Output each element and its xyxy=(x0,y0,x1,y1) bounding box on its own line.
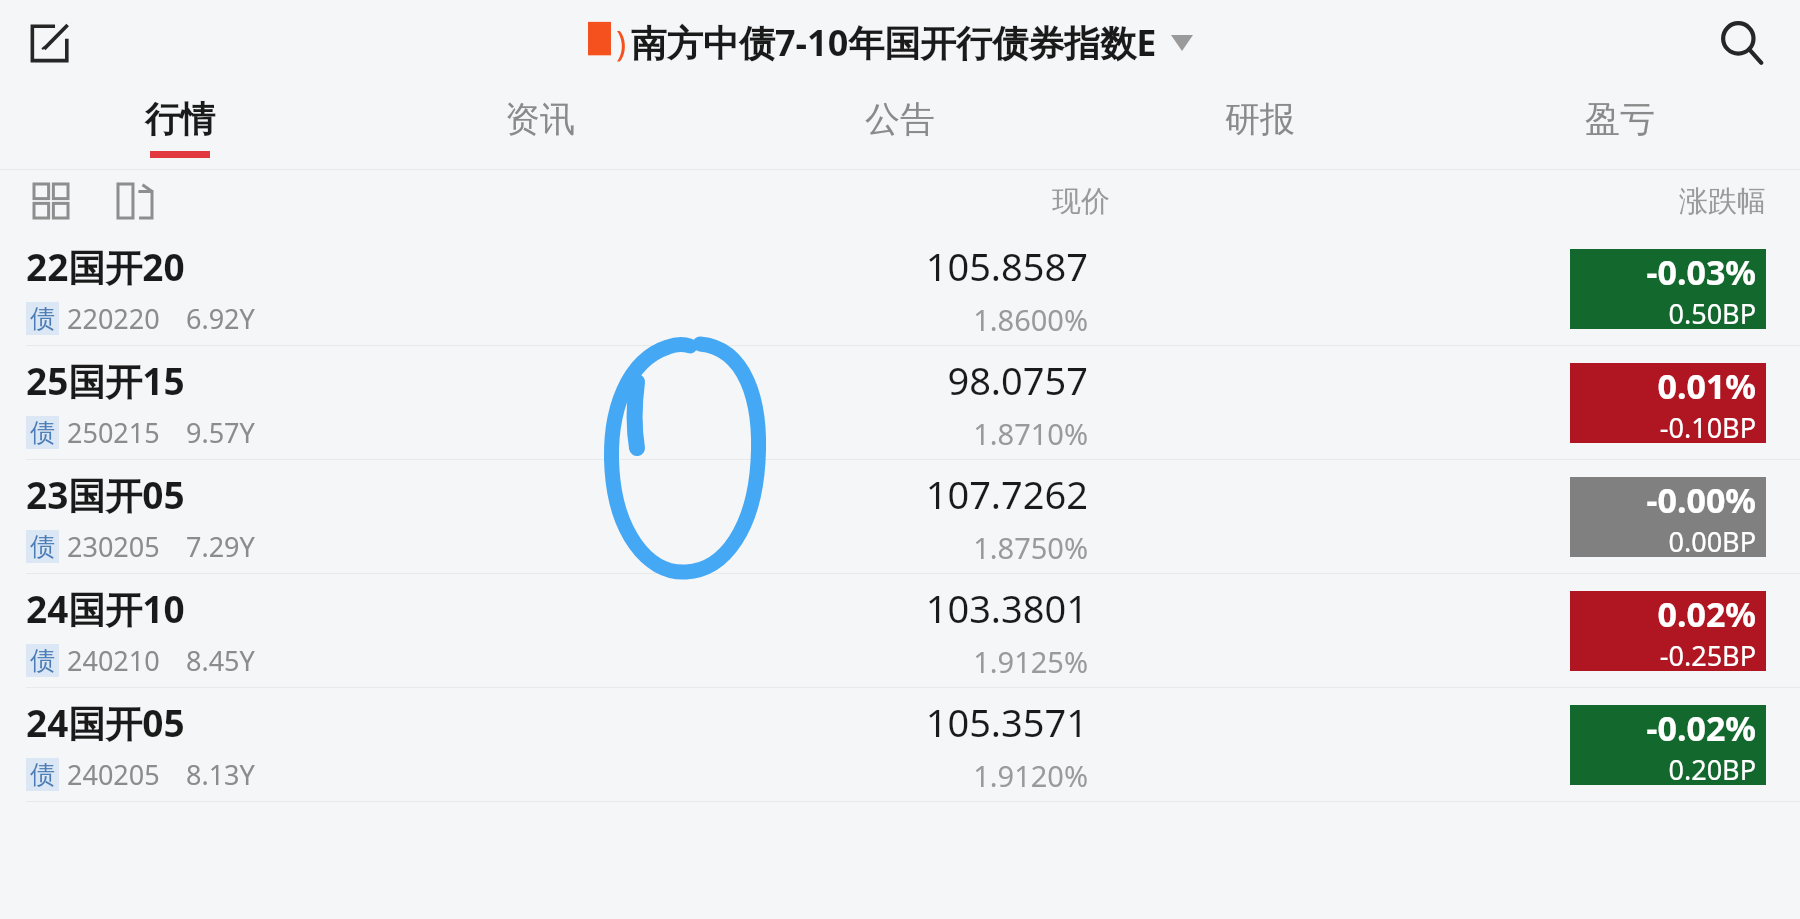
staticText: 9.57Y xyxy=(186,414,255,451)
staticText: 220220 xyxy=(67,300,160,337)
staticText: 债 xyxy=(30,303,55,334)
button[interactable]: 行情 xyxy=(0,85,360,170)
button[interactable]: 公告 xyxy=(720,85,1080,170)
staticText: 7.29Y xyxy=(186,528,255,565)
button[interactable]: 22国开20 xyxy=(0,232,1800,346)
staticText: 盈亏 xyxy=(1585,97,1655,141)
staticText: 24国开05 xyxy=(26,697,185,748)
button[interactable]: 0.02% xyxy=(1570,591,1766,671)
button[interactable]: ) xyxy=(588,18,1193,67)
button[interactable]: -0.00% xyxy=(1570,477,1766,557)
staticText: 25国开15 xyxy=(26,355,185,406)
staticText: 0.00BP xyxy=(1668,523,1756,557)
staticText: -0.03% xyxy=(1646,249,1756,295)
staticText: 0.50BP xyxy=(1668,295,1756,329)
staticText: 研报 xyxy=(1225,97,1295,141)
staticText: -0.10BP xyxy=(1659,409,1756,443)
staticText: 250215 xyxy=(67,414,160,451)
staticText: ) xyxy=(616,20,627,66)
staticText: 105.3571 xyxy=(925,696,1088,748)
staticText: 债 xyxy=(30,645,55,676)
button[interactable]: -0.02% xyxy=(1570,705,1766,785)
button[interactable]: 0.01% xyxy=(1570,363,1766,443)
staticText: 债 xyxy=(30,417,55,448)
button[interactable]: Search xyxy=(1706,7,1778,79)
staticText: -0.25BP xyxy=(1659,637,1756,671)
button[interactable]: 资讯 xyxy=(360,85,720,170)
staticText: -0.02% xyxy=(1646,705,1756,751)
staticText: 8.13Y xyxy=(186,756,255,793)
staticText: 1.9120% xyxy=(973,756,1088,795)
staticText: 23国开05 xyxy=(26,469,185,520)
staticText: 240205 xyxy=(67,756,160,793)
staticText: 0.20BP xyxy=(1668,751,1756,785)
staticText: 1.8710% xyxy=(973,414,1088,453)
staticText: 1.8750% xyxy=(973,528,1088,567)
staticText: 98.0757 xyxy=(947,354,1088,406)
button[interactable]: Grid view xyxy=(24,174,78,228)
staticText: 公告 xyxy=(865,97,935,141)
staticText: 6.92Y xyxy=(186,300,255,337)
staticText: 240210 xyxy=(67,642,160,679)
staticText: 0.01% xyxy=(1657,363,1756,409)
staticText: 现价 xyxy=(1052,183,1110,220)
button[interactable]: 24国开05 xyxy=(0,688,1800,802)
staticText: 行情 xyxy=(145,97,215,141)
staticText: 107.7262 xyxy=(925,468,1088,520)
staticText: 230205 xyxy=(67,528,160,565)
staticText: 债 xyxy=(30,759,55,790)
staticText: 103.3801 xyxy=(925,582,1088,634)
staticText: 南方中债7-10年国开行债券指数E xyxy=(631,18,1157,67)
staticText: 8.45Y xyxy=(186,642,255,679)
button[interactable]: 25国开15 xyxy=(0,346,1800,460)
staticText: 105.8587 xyxy=(925,240,1088,292)
staticText: 债 xyxy=(30,531,55,562)
staticText: 1.9125% xyxy=(973,642,1088,681)
staticText: 24国开10 xyxy=(26,583,185,634)
button[interactable]: Edit xyxy=(14,7,86,79)
staticText: 涨跌幅 xyxy=(1679,183,1766,220)
staticText: 22国开20 xyxy=(26,241,185,292)
button[interactable]: 24国开10 xyxy=(0,574,1800,688)
button[interactable]: 盈亏 xyxy=(1440,85,1800,170)
staticText: 1.8600% xyxy=(973,300,1088,339)
button[interactable]: -0.03% xyxy=(1570,249,1766,329)
staticText: 0.02% xyxy=(1657,591,1756,637)
staticText: -0.00% xyxy=(1646,477,1756,523)
staticText: 资讯 xyxy=(505,97,575,141)
button[interactable]: Sort xyxy=(108,174,162,228)
button[interactable]: 23国开05 xyxy=(0,460,1800,574)
button[interactable]: 研报 xyxy=(1080,85,1440,170)
